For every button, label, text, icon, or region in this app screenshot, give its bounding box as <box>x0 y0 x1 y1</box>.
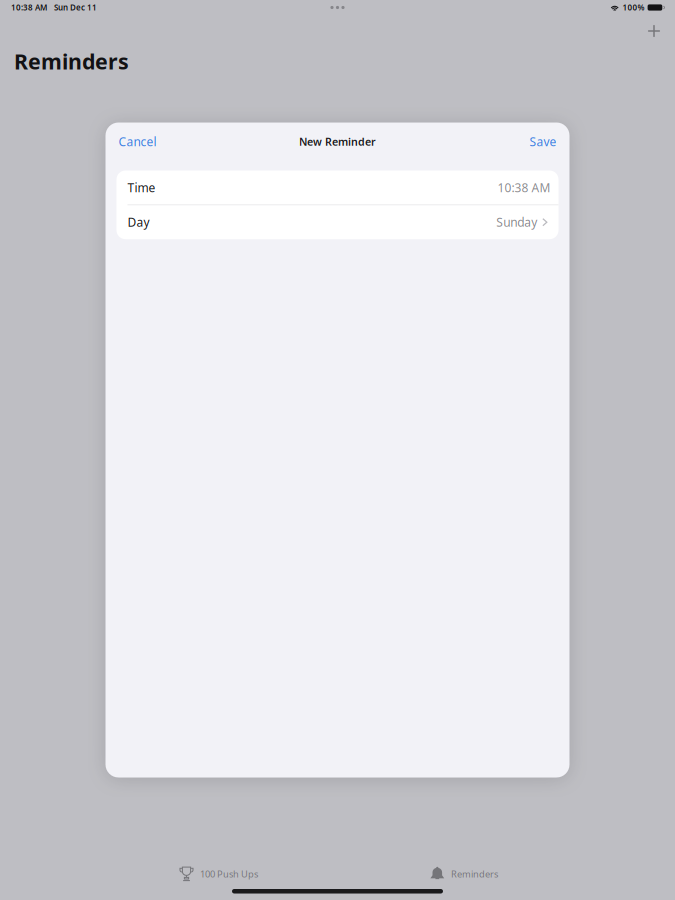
button[interactable]: Day <box>116 205 558 239</box>
staticText: New Reminder <box>299 134 376 149</box>
staticText: 100% <box>622 2 644 13</box>
button[interactable]: Time <box>116 170 558 204</box>
staticText: Cancel <box>118 133 156 149</box>
staticText: Sunday <box>496 214 537 230</box>
staticText: Sun Dec 11 <box>54 2 97 13</box>
button[interactable]: Reminders <box>419 860 509 888</box>
staticText: 10:38 AM <box>497 179 550 195</box>
staticText: 100 Push Ups <box>200 868 258 880</box>
button[interactable]: Cancel <box>106 124 168 158</box>
button[interactable]: 100 Push Ups <box>168 860 269 888</box>
staticText: Reminders <box>14 47 129 75</box>
staticText: Day <box>127 214 149 230</box>
staticText: Reminders <box>451 868 498 880</box>
staticText: Save <box>529 133 556 149</box>
button[interactable]: Save <box>517 124 568 158</box>
button[interactable]: Add Reminder <box>637 16 671 46</box>
staticText: 10:38 AM <box>11 2 47 13</box>
staticText: Time <box>127 179 155 195</box>
